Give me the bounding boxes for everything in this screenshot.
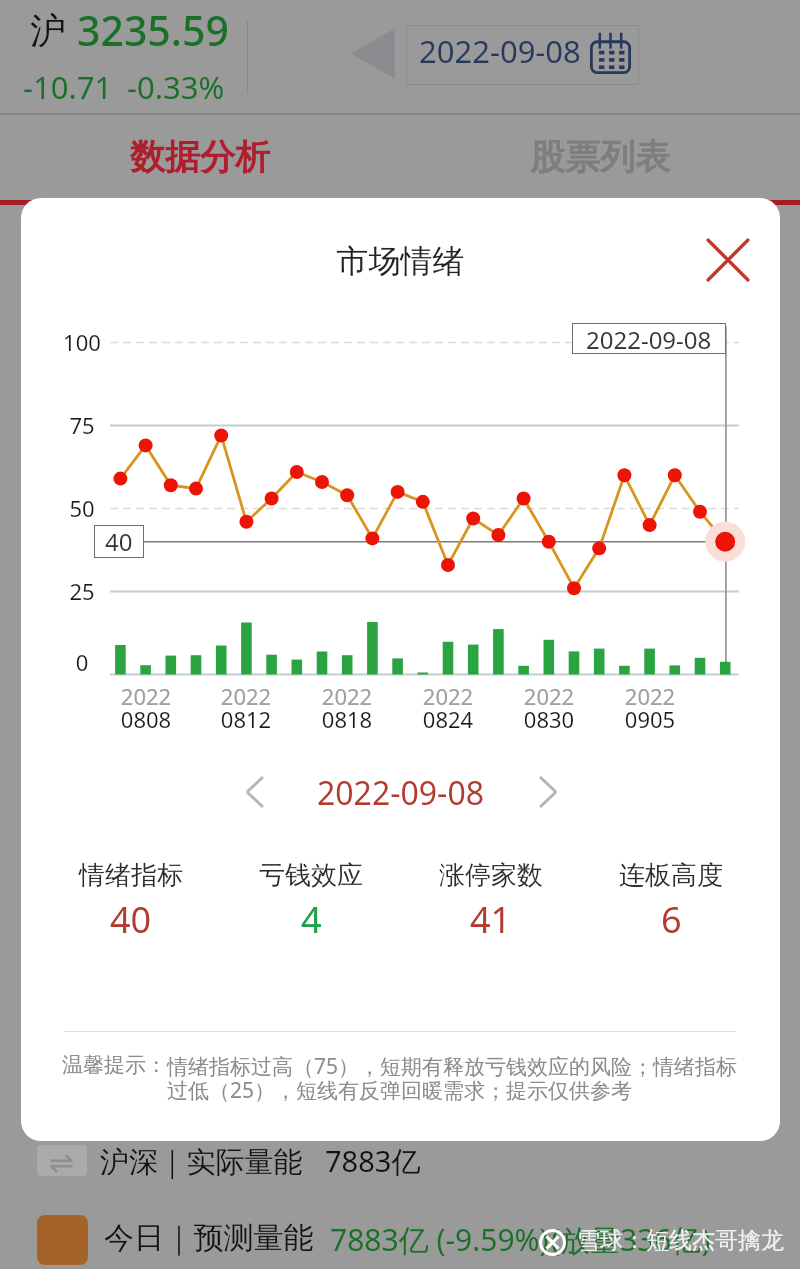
button[interactable]: 连板高度 bbox=[581, 859, 761, 944]
staticText: -0.33% bbox=[127, 66, 225, 108]
staticText: 温馨提示： bbox=[62, 1052, 167, 1078]
button[interactable]: 数据分析 bbox=[0, 115, 400, 198]
staticText: 2022 bbox=[196, 681, 296, 711]
staticText: 连板高度 bbox=[619, 859, 723, 892]
staticText: -10.71 bbox=[23, 66, 113, 108]
staticText: 0824 bbox=[398, 704, 498, 734]
staticText: 40 bbox=[105, 525, 133, 558]
staticText: 25 bbox=[42, 576, 122, 606]
staticText: 6 bbox=[661, 895, 682, 944]
staticText: 100 bbox=[42, 327, 122, 357]
button[interactable] bbox=[0, 1136, 800, 1202]
staticText: 0830 bbox=[499, 704, 599, 734]
staticText: 41 bbox=[470, 895, 512, 944]
staticText: 2022-09-08 bbox=[21, 771, 780, 815]
button[interactable] bbox=[406, 25, 639, 85]
staticText: 沪深｜实际量能 7883亿 bbox=[100, 1141, 421, 1181]
button[interactable]: Close bbox=[700, 232, 756, 288]
staticText: 2022 bbox=[600, 681, 700, 711]
staticText: 2022-09-08 bbox=[419, 30, 581, 72]
staticText: 2022 bbox=[398, 681, 498, 711]
staticText: 0808 bbox=[96, 704, 196, 734]
staticText: 0905 bbox=[600, 704, 700, 734]
staticText: (放量336亿) bbox=[551, 1219, 711, 1260]
staticText: 2022 bbox=[96, 681, 196, 711]
button[interactable]: 涨停家数 bbox=[401, 859, 581, 944]
button[interactable]: 股票列表 bbox=[400, 115, 800, 198]
staticText: 数据分析 bbox=[130, 135, 270, 179]
staticText: 股票列表 bbox=[530, 135, 670, 179]
staticText: 0 bbox=[42, 647, 122, 677]
staticText: 沪 bbox=[30, 8, 66, 53]
button[interactable]: Next day bbox=[522, 766, 574, 818]
staticText: 7883亿 (-9.59%) bbox=[330, 1219, 549, 1260]
staticText: ⇌ bbox=[49, 1145, 75, 1176]
staticText: 0818 bbox=[297, 704, 397, 734]
staticText: 3235.59 bbox=[77, 2, 229, 58]
staticText: 情绪指标过高（75），短期有释放亏钱效应的风险；情绪指标 bbox=[167, 1052, 738, 1081]
button[interactable] bbox=[0, 1202, 800, 1269]
staticText: 过低（25），短线有反弹回暖需求；提示仅供参考 bbox=[167, 1076, 633, 1105]
staticText: 2022-09-08 bbox=[586, 323, 712, 354]
staticText: 75 bbox=[42, 410, 122, 440]
staticText: 情绪指标 bbox=[79, 859, 183, 892]
staticText: 雪球：短线杰哥擒龙 bbox=[577, 1226, 784, 1255]
staticText: 2022 bbox=[499, 681, 599, 711]
staticText: 4 bbox=[301, 895, 322, 944]
staticText: 今日｜预测量能 bbox=[104, 1219, 314, 1257]
staticText: 50 bbox=[42, 493, 122, 523]
staticText: 市场情绪 bbox=[21, 241, 780, 281]
staticText: 0812 bbox=[196, 704, 296, 734]
button[interactable]: 情绪指标 bbox=[41, 859, 221, 944]
staticText: 亏钱效应 bbox=[259, 859, 363, 892]
button[interactable]: 亏钱效应 bbox=[221, 859, 401, 944]
staticText: 40 bbox=[110, 895, 152, 944]
staticText: 2022 bbox=[297, 681, 397, 711]
staticText: 涨停家数 bbox=[439, 859, 543, 892]
button[interactable]: Previous day bbox=[229, 766, 281, 818]
button[interactable]: Previous bbox=[345, 22, 401, 85]
